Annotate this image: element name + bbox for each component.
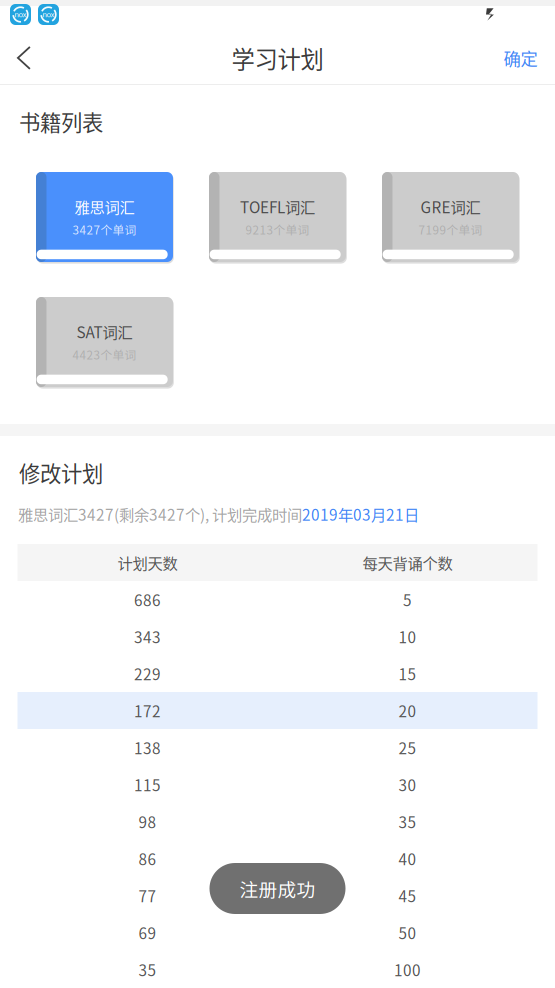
staticText: 2019年03月21日 bbox=[302, 503, 419, 525]
staticText: 修改计划 bbox=[19, 457, 103, 488]
staticText: 343 bbox=[134, 625, 161, 648]
staticText: 10 bbox=[398, 625, 416, 648]
staticText: GRE词汇 bbox=[420, 195, 480, 218]
button[interactable]: 172 bbox=[17, 692, 537, 729]
staticText: 172 bbox=[134, 699, 161, 722]
staticText: 86 bbox=[138, 847, 156, 870]
button[interactable]: Back bbox=[0, 32, 48, 84]
staticText: 35 bbox=[398, 810, 416, 833]
button[interactable]: TOEFL词汇 bbox=[209, 172, 346, 262]
staticText: 书籍列表 bbox=[19, 106, 103, 137]
staticText: 77 bbox=[138, 884, 156, 907]
staticText: 9213个单词 bbox=[245, 221, 309, 238]
button[interactable]: 115 bbox=[17, 766, 537, 803]
button[interactable]: 86 bbox=[17, 840, 537, 877]
button[interactable]: 确定 bbox=[486, 32, 555, 84]
staticText: nox bbox=[14, 10, 26, 19]
staticText: 学习计划 bbox=[231, 41, 323, 75]
button[interactable]: SAT词汇 bbox=[36, 297, 173, 387]
button[interactable]: 69 bbox=[17, 914, 537, 951]
staticText: 686 bbox=[134, 588, 161, 611]
staticText: nox bbox=[42, 10, 54, 19]
staticText: 35 bbox=[138, 958, 156, 981]
staticText: 5 bbox=[403, 588, 412, 611]
staticText: 50 bbox=[398, 921, 416, 944]
staticText: 30 bbox=[398, 773, 416, 796]
button[interactable]: 77 bbox=[17, 877, 537, 914]
button[interactable]: GRE词汇 bbox=[382, 172, 519, 262]
button[interactable]: 229 bbox=[17, 655, 537, 692]
staticText: 45 bbox=[398, 884, 416, 907]
staticText: 每天背诵个数 bbox=[362, 551, 452, 574]
button[interactable]: 98 bbox=[17, 803, 537, 840]
button[interactable]: 686 bbox=[17, 581, 537, 618]
staticText: 注册成功 bbox=[239, 875, 315, 902]
button[interactable]: 138 bbox=[17, 729, 537, 766]
staticText: 15 bbox=[398, 662, 416, 685]
staticText: SAT词汇 bbox=[76, 320, 132, 343]
staticText: 229 bbox=[134, 662, 161, 685]
staticText: 雅思词汇3427(剩余3427个), 计划完成时间 bbox=[18, 503, 302, 525]
button[interactable]: 雅思词汇 bbox=[36, 172, 173, 262]
staticText: 25 bbox=[398, 736, 416, 759]
staticText: 69 bbox=[138, 921, 156, 944]
staticText: 确定 bbox=[503, 45, 537, 71]
staticText: 4423个单词 bbox=[72, 346, 136, 363]
staticText: 7199个单词 bbox=[418, 221, 482, 238]
staticText: 3427个单词 bbox=[72, 221, 136, 238]
staticText: TOEFL词汇 bbox=[240, 195, 315, 218]
button[interactable]: 35 bbox=[17, 951, 537, 988]
button[interactable]: 343 bbox=[17, 618, 537, 655]
staticText: 雅思词汇 bbox=[74, 195, 134, 218]
staticText: 20 bbox=[398, 699, 416, 722]
staticText: 138 bbox=[134, 736, 161, 759]
staticText: 115 bbox=[134, 773, 161, 796]
staticText: 计划天数 bbox=[117, 551, 177, 574]
staticText: 98 bbox=[138, 810, 156, 833]
staticText: 100 bbox=[394, 958, 421, 981]
staticText: 40 bbox=[398, 847, 416, 870]
